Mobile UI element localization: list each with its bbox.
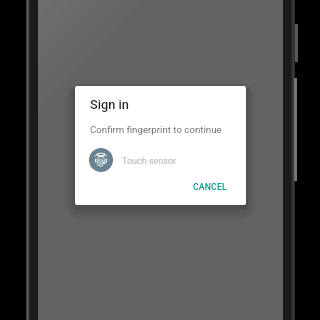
staticText: Confirm fingerprint to continue [90,124,222,135]
other: Fingerprint sensor [89,148,113,172]
staticText: Sign in [90,97,129,112]
staticText: CANCEL [193,182,227,192]
staticText: Touch sensor [122,156,177,167]
button[interactable]: CANCEL [185,176,235,198]
